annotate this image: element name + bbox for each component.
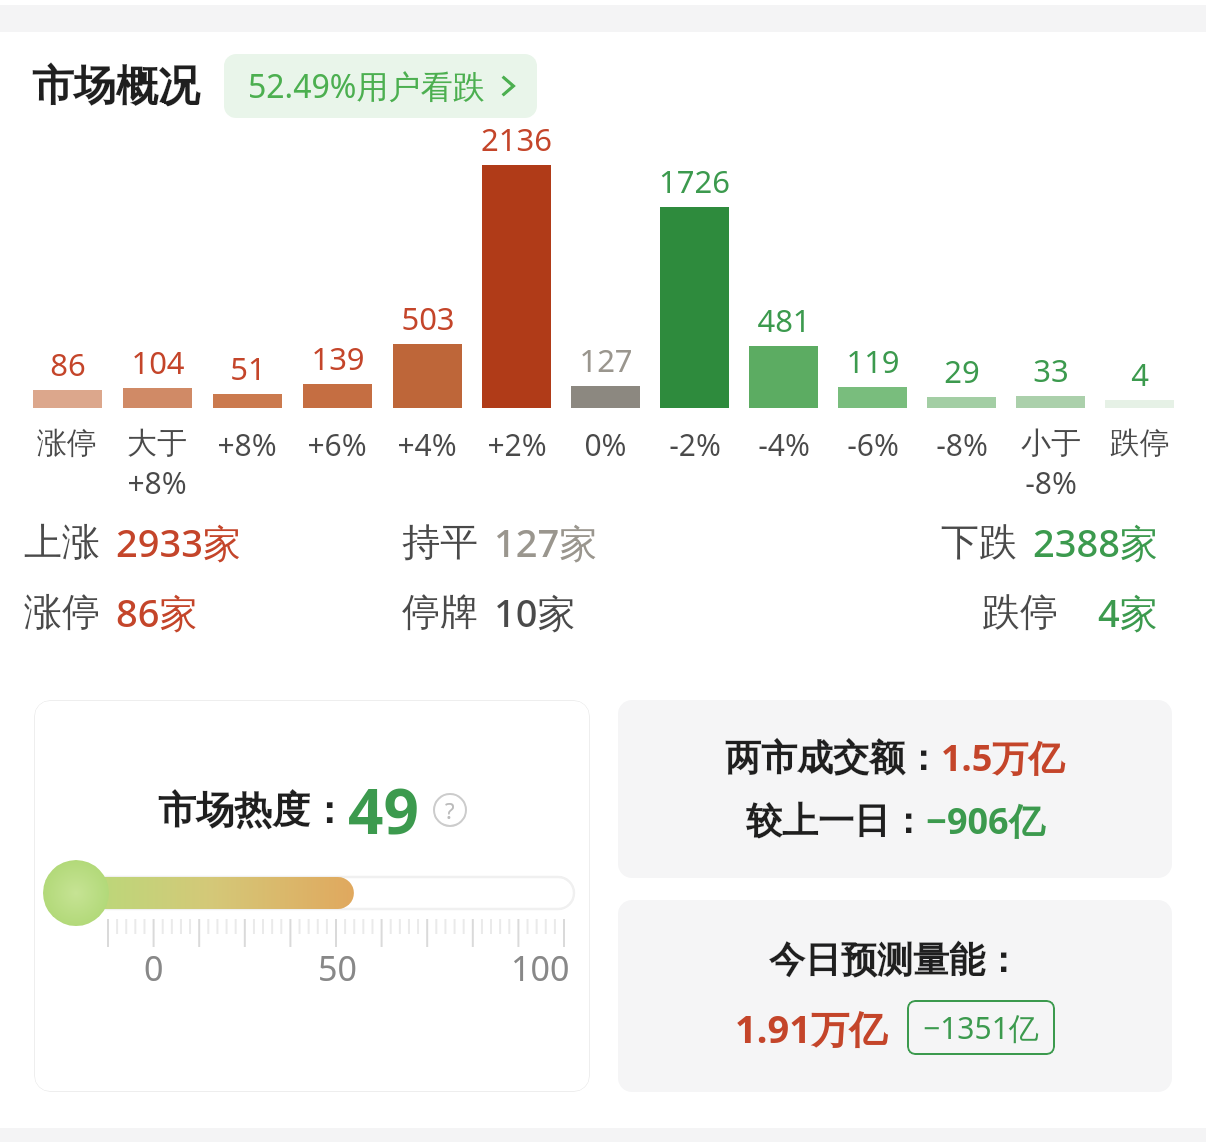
staticText: 50 [318,945,357,991]
staticText: 2136 [481,118,552,160]
staticText: 两市成交额： [725,735,941,780]
staticText: 86家 [116,586,198,638]
staticText: +4% [397,424,457,465]
staticText: -8% [936,424,988,465]
staticText: +6% [307,424,367,465]
staticText: 104 [131,341,185,383]
staticText: 86 [50,343,86,385]
staticText: 下跌 [941,518,1017,566]
button[interactable]: 市场热度： [34,700,590,1092]
staticText: -6% [847,424,899,465]
button[interactable]: 今日预测量能： [618,900,1172,1092]
staticText: 市场概况 [32,60,200,113]
staticText: 大于 [127,424,187,462]
staticText: -2% [669,424,721,465]
staticText: 51 [230,347,266,389]
staticText: 停牌 [402,588,478,636]
staticText: 0% [584,424,627,465]
staticText: 2933家 [116,516,241,568]
staticText: 139 [311,337,365,379]
button[interactable]: Help about market heat [433,793,467,827]
staticText: 持平 [402,518,478,566]
button[interactable]: 两市成交额： [618,700,1172,878]
staticText: 127 [579,339,633,381]
staticText: 4 [1131,353,1149,395]
staticText: 29 [944,350,980,392]
staticText: +8% [217,424,277,465]
staticText: 52.49%用户看跌 [248,64,485,108]
staticText: +8% [127,462,187,498]
staticText: 今日预测量能： [769,937,1021,982]
staticText: 1726 [659,160,730,202]
staticText: 503 [401,297,455,339]
staticText: 涨停 [37,424,97,462]
staticText: −1351亿 [923,1007,1039,1048]
staticText: 跌停 [1110,424,1170,462]
staticText: 较上一日： [746,798,926,843]
staticText: 127家 [494,516,598,568]
staticText: -4% [758,424,810,465]
staticText: 上涨 [24,518,100,566]
staticText: 100 [511,945,570,991]
staticText: 4家 [1098,586,1158,638]
staticText: +2% [487,424,547,465]
staticText: −906亿 [926,796,1045,845]
staticText: 2388家 [1033,516,1158,568]
staticText: 10家 [494,586,576,638]
staticText: 跌停 [982,588,1058,636]
staticText: 涨停 [24,588,100,636]
staticText: 1.91万亿 [735,1002,887,1054]
staticText: 0 [144,945,164,991]
staticText: -8% [1025,462,1077,498]
button[interactable]: 52.49%用户看跌 [224,54,537,118]
staticText: 119 [846,340,900,382]
staticText: 1.5万亿 [941,733,1065,782]
staticText: 33 [1033,349,1069,391]
staticText: ? [445,795,455,825]
staticText: 小于 [1021,424,1081,462]
staticText: 481 [757,299,811,341]
staticText: 市场热度： [158,786,348,834]
staticText: 49 [348,768,419,852]
